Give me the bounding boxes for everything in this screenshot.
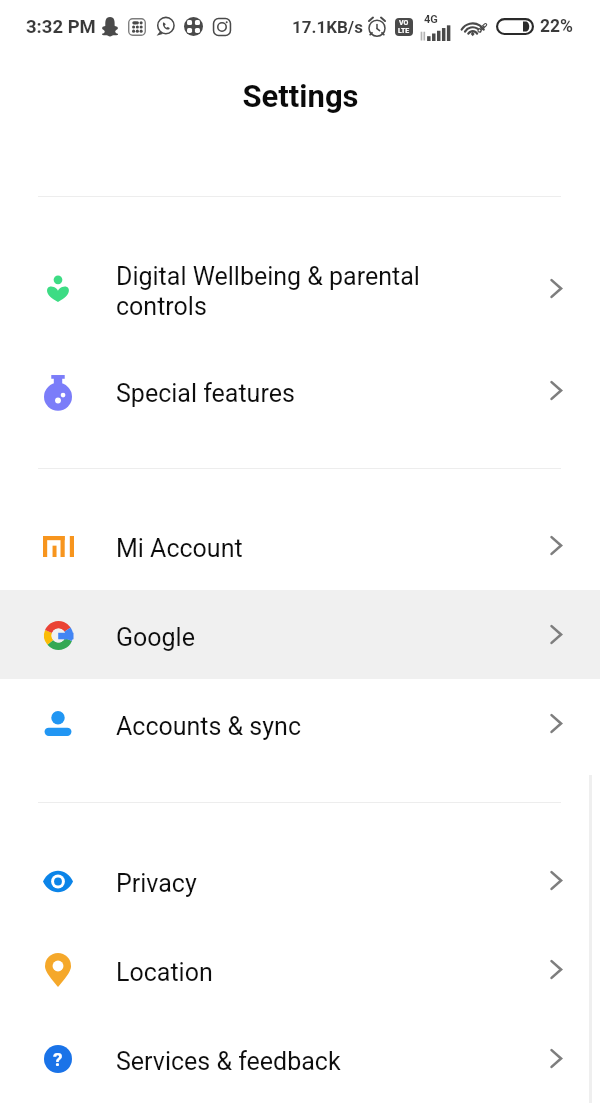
button[interactable]: Google bbox=[0, 590, 600, 679]
button[interactable]: ? bbox=[0, 1014, 600, 1103]
staticText: Settings bbox=[242, 78, 359, 114]
staticText: Privacy bbox=[116, 869, 446, 898]
button[interactable]: Digital Wellbeing & parental controls bbox=[0, 231, 600, 346]
staticText: Google bbox=[116, 623, 446, 652]
staticText: ? bbox=[53, 1048, 63, 1070]
staticText: 22% bbox=[540, 16, 574, 37]
staticText: Accounts & sync bbox=[116, 712, 446, 741]
staticText: 3:32 PM bbox=[26, 16, 96, 38]
button[interactable]: Accounts & sync bbox=[0, 679, 600, 768]
staticText: LTE bbox=[398, 27, 410, 35]
button[interactable]: Location bbox=[0, 925, 600, 1014]
staticText: Mi Account bbox=[116, 534, 446, 563]
button[interactable]: Mi Account bbox=[0, 501, 600, 590]
staticText: 17.1KB/s bbox=[292, 17, 363, 37]
staticText: Digital Wellbeing & parental controls bbox=[116, 262, 446, 321]
staticText: Location bbox=[116, 958, 446, 987]
staticText: 4G bbox=[424, 13, 438, 26]
staticText: Special features bbox=[116, 379, 446, 408]
staticText: Services & feedback bbox=[116, 1047, 446, 1076]
button[interactable]: Special features bbox=[0, 346, 600, 435]
staticText: VO bbox=[399, 19, 409, 27]
button[interactable]: Privacy bbox=[0, 836, 600, 925]
